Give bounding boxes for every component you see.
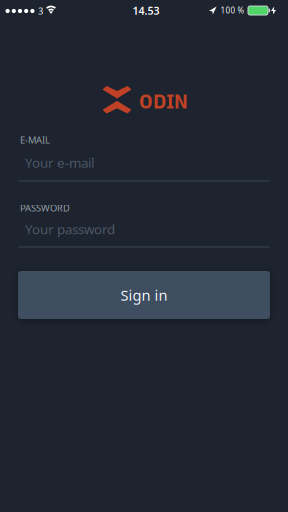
staticText: 14.53	[132, 3, 159, 18]
staticText: 3	[38, 5, 43, 17]
staticText: Your password	[25, 220, 115, 238]
button[interactable]: Your password	[18, 216, 270, 247]
button[interactable]: Sign in	[18, 271, 270, 319]
button[interactable]: Your e-mail	[18, 150, 270, 182]
staticText: E-MAIL	[20, 134, 50, 146]
staticText: Sign in	[120, 285, 167, 305]
staticText: ODIN	[139, 87, 188, 114]
staticText: PASSWORD	[20, 202, 70, 214]
staticText: 100 %	[220, 5, 244, 16]
staticText: Your e-mail	[25, 154, 94, 171]
